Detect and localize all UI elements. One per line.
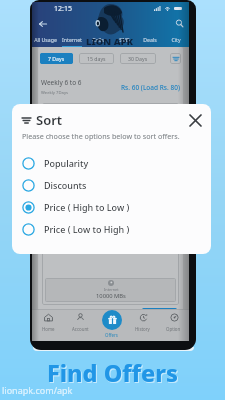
staticText: Weekly 6 to 6: [41, 78, 82, 87]
staticText: Option: [166, 326, 181, 332]
staticText: 10000 MBs: [96, 292, 126, 300]
staticText: 12:15: [54, 4, 72, 14]
staticText: Internet: [104, 287, 119, 292]
staticText: Find Offers: [47, 357, 179, 389]
button[interactable]: Discounts: [22, 174, 204, 196]
button[interactable]: Offers: [96, 310, 127, 341]
staticText: Discounts: [44, 179, 87, 191]
staticText: Please choose the options below to sort …: [22, 131, 180, 141]
button[interactable]: Sort: [170, 53, 181, 64]
button[interactable]: Internet: [59, 31, 85, 47]
button[interactable]: 7 Days: [40, 53, 73, 64]
staticText: Find Offers: [48, 358, 180, 390]
staticText: City: [171, 36, 181, 43]
staticText: All Usage: [34, 36, 57, 43]
staticText: History: [135, 326, 150, 332]
staticText: Price ( Low to High ): [44, 223, 130, 235]
staticText: VIEW MORE: [109, 311, 135, 317]
button[interactable]: Price ( Low to High ): [22, 218, 204, 240]
staticText: Calls: [92, 36, 104, 43]
button[interactable]: Account: [64, 310, 96, 341]
staticText: Internet: [62, 36, 82, 43]
button[interactable]: 15 days: [79, 53, 114, 64]
staticText: LION APK: [86, 35, 134, 48]
button[interactable]: All Usage: [32, 31, 59, 47]
button[interactable]: SMS: [111, 31, 137, 47]
button[interactable]: Deals: [137, 31, 163, 47]
staticText: 7 Days: [48, 55, 65, 62]
button[interactable]: Popularity: [22, 152, 204, 174]
button[interactable]: Back: [35, 16, 50, 31]
staticText: Offers: [105, 332, 118, 338]
staticText: 15 days: [87, 55, 106, 62]
button[interactable]: Close: [186, 111, 204, 129]
button[interactable]: 30 Days: [120, 53, 156, 64]
button[interactable]: City: [163, 31, 189, 47]
staticText: SMS: [119, 36, 130, 43]
staticText: Price ( High to Low ): [44, 201, 130, 213]
button[interactable]: Option: [158, 310, 189, 341]
staticText: Home: [42, 326, 55, 332]
staticText: 30 Days: [128, 55, 148, 62]
staticText: Rs. 60 (Load Rs. 80): [121, 83, 180, 92]
staticText: Sort: [36, 111, 63, 129]
button[interactable]: Search: [172, 16, 187, 31]
staticText: lionapk.com/apk: [2, 384, 73, 396]
staticText: Account: [72, 326, 89, 332]
button[interactable]: ACTIVATE: [142, 308, 177, 319]
staticText: Popularity: [44, 157, 89, 169]
button[interactable]: Home: [32, 310, 64, 341]
button[interactable]: Price ( High to Low ): [22, 196, 204, 218]
button[interactable]: Calls: [85, 31, 111, 47]
staticText: Deals: [143, 36, 157, 43]
button[interactable]: VIEW MORE: [105, 308, 139, 319]
staticText: Weekly 7Days: [41, 90, 69, 96]
button[interactable]: History: [127, 310, 158, 341]
